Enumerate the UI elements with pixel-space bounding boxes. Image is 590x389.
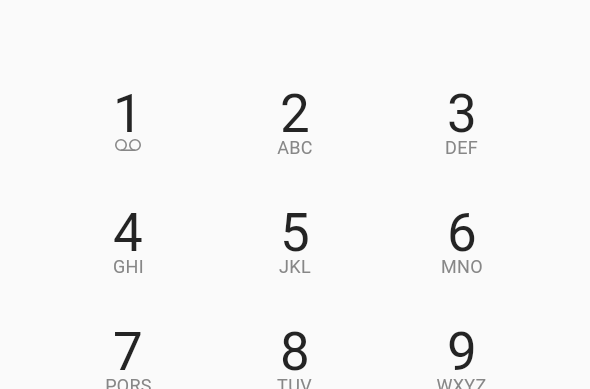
staticText: 2 — [280, 83, 310, 145]
button[interactable]: 5 JKL — [211, 194, 378, 313]
button[interactable]: 2 ABC — [211, 75, 378, 194]
staticText: 3 — [447, 83, 477, 145]
staticText: 7 — [113, 321, 143, 383]
staticText: 9 — [447, 321, 477, 383]
staticText: GHI — [113, 256, 144, 277]
button[interactable]: 4 GHI — [45, 194, 211, 313]
staticText: TUV — [277, 375, 312, 389]
button[interactable]: 8 TUV — [211, 313, 378, 389]
button[interactable]: 1 — [45, 75, 211, 194]
staticText: WXYZ — [436, 375, 487, 389]
staticText: PQRS — [105, 375, 152, 389]
staticText: DEF — [445, 137, 478, 158]
staticText: 4 — [113, 202, 143, 264]
staticText: JKL — [279, 256, 311, 277]
staticText: 5 — [280, 202, 310, 264]
other: Voicemail — [115, 139, 141, 151]
button[interactable]: 6 MNO — [378, 194, 545, 313]
staticText: 8 — [280, 321, 310, 383]
staticText: MNO — [441, 256, 483, 277]
staticText: ABC — [277, 137, 313, 158]
button[interactable]: 3 DEF — [378, 75, 545, 194]
staticText: 6 — [447, 202, 477, 264]
staticText: 1 — [113, 83, 143, 145]
button[interactable]: 7 PQRS — [45, 313, 211, 389]
button[interactable]: 9 WXYZ — [378, 313, 545, 389]
